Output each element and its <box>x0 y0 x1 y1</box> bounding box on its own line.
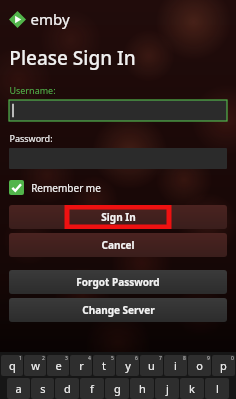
button[interactable]: g <box>105 378 129 399</box>
staticText: p <box>220 358 227 373</box>
staticText: Username: <box>9 84 56 96</box>
button[interactable]: j <box>155 378 179 399</box>
staticText: Remember me <box>31 181 101 195</box>
staticText: 7 <box>159 355 162 362</box>
staticText: s <box>40 381 46 396</box>
staticText: f <box>90 381 94 396</box>
staticText: t <box>102 358 106 373</box>
button[interactable]: a <box>7 378 30 399</box>
staticText: q <box>9 358 16 373</box>
staticText: 9 <box>207 355 210 362</box>
staticText: Cancel <box>101 238 135 252</box>
staticText: emby <box>30 9 70 29</box>
button[interactable]: d <box>55 378 79 399</box>
button[interactable]: f <box>80 378 104 399</box>
button[interactable]: Forgot Password <box>9 270 227 294</box>
staticText: r <box>79 358 84 373</box>
staticText: j <box>166 381 169 396</box>
staticText: 0 <box>231 355 234 362</box>
staticText: d <box>64 381 71 396</box>
button[interactable] <box>9 100 227 121</box>
button[interactable]: o <box>188 355 211 376</box>
button[interactable]: k <box>180 378 204 399</box>
button[interactable]: r <box>70 355 92 376</box>
button[interactable]: h <box>130 378 154 399</box>
staticText: 6 <box>135 355 138 362</box>
staticText: e <box>55 358 62 373</box>
staticText: u <box>148 358 155 373</box>
button[interactable]: t <box>93 355 115 376</box>
button[interactable]: Change Server <box>9 298 227 322</box>
staticText: 3 <box>65 355 68 362</box>
staticText: Change Server <box>82 303 155 317</box>
button[interactable]: y <box>116 355 139 376</box>
staticText: y <box>125 358 131 373</box>
staticText: i <box>174 358 177 373</box>
staticText: l <box>216 381 219 396</box>
button[interactable]: u <box>140 355 163 376</box>
staticText: w <box>31 358 40 373</box>
button[interactable]: s <box>31 378 54 399</box>
staticText: h <box>139 381 146 396</box>
button[interactable]: w <box>24 355 46 376</box>
staticText: Please Sign In <box>9 45 136 71</box>
staticText: g <box>114 381 121 396</box>
staticText: o <box>196 358 203 373</box>
staticText: Password: <box>9 132 53 144</box>
staticText: 5 <box>111 355 114 362</box>
button[interactable]: Sign In <box>9 205 227 229</box>
button[interactable]: l <box>205 378 229 399</box>
button[interactable]: p <box>212 355 235 376</box>
staticText: k <box>189 381 195 396</box>
staticText: a <box>15 381 22 396</box>
button[interactable]: i <box>164 355 187 376</box>
staticText: 2 <box>42 355 45 362</box>
staticText: 8 <box>183 355 186 362</box>
button[interactable]: e <box>47 355 69 376</box>
staticText: Sign In <box>101 210 136 224</box>
button[interactable]: Cancel <box>9 233 227 257</box>
staticText: 4 <box>88 355 91 362</box>
staticText: Forgot Password <box>76 275 160 289</box>
button[interactable]: q <box>1 355 23 376</box>
button[interactable]: Remember me <box>9 180 101 195</box>
staticText: 1 <box>19 355 22 362</box>
button[interactable]: Emby <box>9 9 70 29</box>
